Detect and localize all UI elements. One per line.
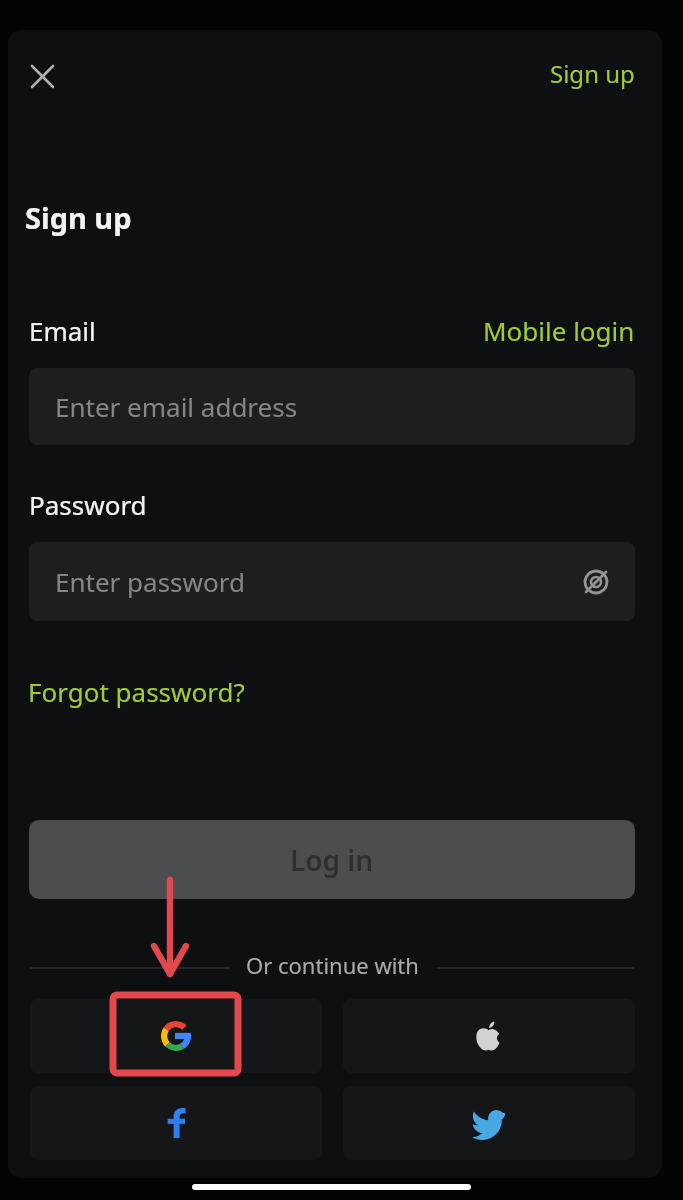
staticText: Mobile login bbox=[483, 313, 635, 348]
button[interactable] bbox=[343, 999, 635, 1073]
staticText: Log in bbox=[290, 841, 374, 879]
button[interactable]: Log in bbox=[29, 820, 635, 899]
button[interactable]: Mobile login bbox=[335, 313, 635, 348]
staticText: Forgot password? bbox=[28, 674, 245, 709]
staticText: Or continue with bbox=[246, 950, 419, 980]
staticText: Password bbox=[29, 487, 147, 522]
button[interactable]: Enter email address bbox=[29, 368, 635, 445]
staticText: Email bbox=[29, 313, 96, 348]
button[interactable]: Enter password bbox=[29, 542, 635, 621]
staticText: Sign up bbox=[25, 198, 132, 237]
button[interactable] bbox=[30, 1086, 322, 1160]
staticText: Enter email address bbox=[55, 389, 298, 424]
button[interactable] bbox=[22, 56, 62, 96]
button[interactable]: Forgot password? bbox=[28, 674, 245, 709]
staticText: Sign up bbox=[550, 57, 635, 90]
button[interactable]: Sign up bbox=[435, 55, 635, 91]
button[interactable] bbox=[343, 1086, 635, 1160]
button[interactable] bbox=[30, 999, 322, 1073]
staticText: Enter password bbox=[55, 564, 245, 599]
